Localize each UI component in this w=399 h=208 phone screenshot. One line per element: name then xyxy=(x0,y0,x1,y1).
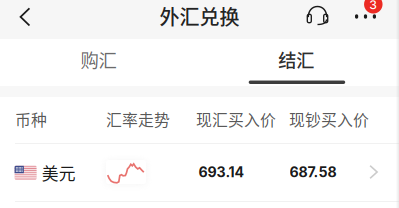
staticText: 687.58 xyxy=(289,163,336,180)
button[interactable]: 结汇 xyxy=(199,39,399,86)
button[interactable]: 购汇 xyxy=(0,39,199,86)
staticText: 693.14 xyxy=(198,163,244,180)
staticText: 现汇买入价 xyxy=(196,107,276,130)
staticText: 3 xyxy=(369,0,377,12)
button[interactable]: Customer service xyxy=(300,0,336,37)
staticText: 结汇 xyxy=(278,46,314,72)
staticText: 币种 xyxy=(15,107,47,130)
staticText: 购汇 xyxy=(80,46,116,73)
staticText: 汇率走势 xyxy=(106,107,170,130)
staticText: 外汇兑换 xyxy=(159,1,239,30)
staticText: 美元 xyxy=(42,160,76,185)
staticText: 现钞买入价 xyxy=(289,107,369,130)
button[interactable]: More xyxy=(345,0,386,37)
button[interactable]: 美元 xyxy=(0,144,399,201)
button[interactable]: Back xyxy=(0,0,48,37)
